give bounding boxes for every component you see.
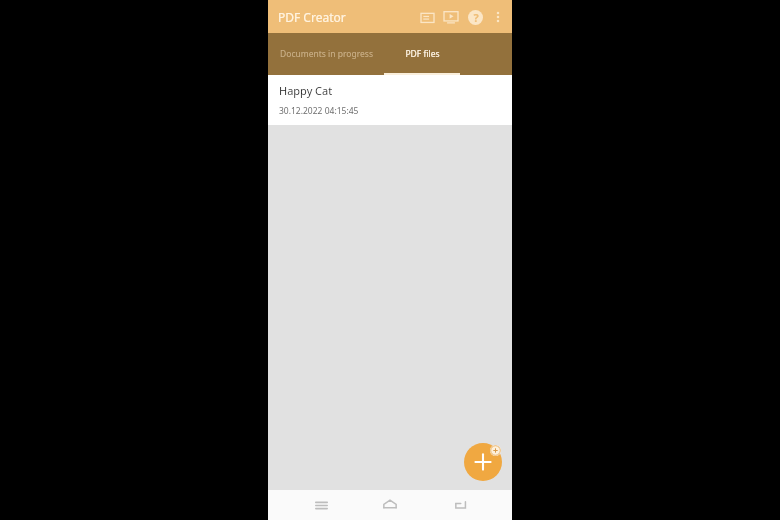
- staticText: 30.12.2022 04:15:45: [279, 105, 359, 117]
- staticText: ?: [473, 10, 479, 25]
- button[interactable]: Folder: [415, 5, 439, 29]
- button[interactable]: Happy Cat: [268, 75, 512, 125]
- button[interactable]: Recent apps: [304, 490, 338, 520]
- button[interactable]: Back: [443, 490, 477, 520]
- button[interactable]: Documents in progress: [268, 33, 384, 75]
- button[interactable]: More options: [487, 6, 509, 28]
- staticText: PDF files: [405, 48, 440, 60]
- button[interactable]: PDF files: [384, 33, 460, 75]
- staticText: Happy Cat: [279, 83, 333, 98]
- staticText: PDF Creator: [278, 9, 346, 25]
- button[interactable]: Preview slideshow: [439, 5, 463, 29]
- button[interactable]: Help: [463, 5, 487, 29]
- staticText: Documents in progress: [280, 48, 373, 60]
- button[interactable]: Create new PDF: [464, 443, 502, 481]
- button[interactable]: Home: [373, 490, 407, 520]
